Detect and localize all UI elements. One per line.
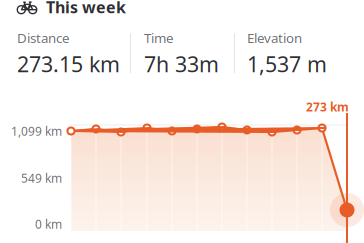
staticText: Elevation — [247, 29, 302, 47]
staticText: Distance — [17, 29, 70, 47]
staticText: 1,099 km — [11, 123, 62, 139]
staticText: Time — [144, 29, 174, 47]
staticText: This week — [46, 0, 126, 18]
staticText: 1,537 m — [247, 50, 327, 78]
staticText: 0 km — [35, 216, 62, 232]
staticText: 7h 33m — [144, 50, 219, 78]
staticText: 273 km — [306, 99, 349, 115]
staticText: 549 km — [21, 170, 62, 186]
staticText: 273.15 km — [17, 50, 120, 78]
